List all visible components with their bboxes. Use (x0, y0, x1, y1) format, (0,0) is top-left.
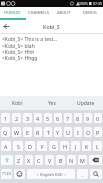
staticText: R (36, 129, 40, 136)
staticText: 4 (36, 115, 40, 122)
button[interactable]: G (49, 141, 58, 151)
staticText: O (86, 129, 91, 136)
staticText: ?123 (2, 171, 12, 177)
staticText: F (41, 143, 44, 150)
button[interactable]: K (82, 141, 91, 151)
staticText: X (27, 157, 31, 164)
button[interactable]: H (60, 141, 69, 151)
button[interactable]: 5 (44, 113, 52, 123)
staticText: 2 (15, 115, 19, 122)
staticText: Z (17, 157, 21, 164)
button[interactable]: CHANNELS (25, 7, 51, 18)
staticText: ABOUT (57, 10, 71, 15)
button[interactable]: A (1, 141, 11, 151)
staticText: 9 (86, 115, 90, 122)
staticText: Q (3, 129, 8, 136)
button[interactable]: L (93, 141, 102, 151)
button[interactable]: S (13, 141, 23, 151)
staticText: 8 (76, 115, 80, 122)
button[interactable]: 0 (94, 113, 102, 123)
button[interactable]: Backspace (89, 155, 102, 165)
staticText: D (28, 143, 32, 150)
staticText: K (85, 143, 89, 150)
button[interactable]: Kobi (0, 96, 35, 110)
button[interactable]: J (71, 141, 80, 151)
staticText: 5 (46, 115, 50, 122)
button[interactable]: Search (90, 169, 102, 179)
staticText: P (96, 129, 100, 136)
staticText: W (14, 129, 20, 136)
button[interactable]: E (23, 127, 32, 137)
button[interactable]: U (64, 127, 72, 137)
staticText: FRIENDS (4, 10, 21, 15)
button[interactable]: 6 (54, 113, 62, 123)
staticText: C (37, 157, 41, 164)
staticText: N (69, 157, 74, 164)
button[interactable]: X (25, 155, 33, 165)
staticText: 07:35 (93, 1, 102, 6)
staticText: Kobi (12, 100, 23, 107)
button[interactable]: 4 (34, 113, 42, 123)
button[interactable]: DEBUG (77, 7, 103, 18)
button[interactable]: V (45, 155, 54, 165)
staticText: 3 (26, 115, 30, 122)
button[interactable]: . (77, 169, 88, 179)
button[interactable]: M (78, 155, 87, 165)
button[interactable]: I (74, 127, 82, 137)
staticText: Yes (48, 100, 56, 107)
staticText: L (96, 143, 99, 150)
staticText: ‹ English (US) › (37, 172, 66, 177)
staticText: V (48, 157, 52, 164)
button[interactable]: W (12, 127, 21, 137)
staticText: 100% (79, 1, 88, 6)
staticText: J (75, 143, 77, 150)
staticText: DEBUG (83, 10, 97, 15)
button[interactable]: Shift (1, 155, 13, 165)
staticText: Kobi_S (43, 23, 60, 30)
button[interactable]: Z (15, 155, 23, 165)
button[interactable]: Update (69, 96, 103, 110)
staticText: A (4, 143, 8, 150)
staticText: 7 (66, 115, 70, 122)
staticText: T (47, 129, 50, 136)
button[interactable]: 7 (64, 113, 72, 123)
button[interactable]: Emoji (14, 169, 25, 179)
button[interactable]: T (44, 127, 52, 137)
button[interactable]: Yes (35, 96, 69, 110)
button[interactable]: Q (1, 127, 10, 137)
staticText: E (26, 129, 29, 136)
staticText: . (82, 171, 84, 178)
button[interactable]: ‹ English (US) › (27, 169, 75, 179)
button[interactable]: 9 (84, 113, 92, 123)
button[interactable]: N (67, 155, 76, 165)
staticText: S (17, 143, 20, 150)
button[interactable]: C (35, 155, 43, 165)
button[interactable]: ABOUT (51, 7, 77, 18)
staticText: 6 (56, 115, 60, 122)
button[interactable]: O (84, 127, 92, 137)
staticText: 0 (96, 115, 100, 122)
button[interactable]: D (25, 141, 35, 151)
staticText: H (63, 143, 67, 150)
button[interactable]: P (94, 127, 102, 137)
staticText: CHANNELS (28, 10, 49, 15)
staticText: U (66, 129, 70, 136)
button[interactable]: 2 (12, 113, 21, 123)
button[interactable]: FRIENDS (0, 7, 25, 18)
button[interactable]: B (56, 155, 65, 165)
staticText: 1 (4, 115, 8, 122)
button[interactable]: Back (0, 20, 13, 33)
staticText: Y (56, 129, 60, 136)
button[interactable]: Y (54, 127, 62, 137)
button[interactable]: 8 (74, 113, 82, 123)
button[interactable]: R (34, 127, 42, 137)
button[interactable]: F (37, 141, 47, 151)
staticText: I (77, 129, 79, 136)
staticText: B (59, 157, 63, 164)
staticText: M (80, 157, 85, 164)
button[interactable]: ?123 (1, 169, 12, 179)
button[interactable]: 1 (1, 113, 10, 123)
button[interactable]: 3 (23, 113, 32, 123)
staticText: Update (77, 100, 95, 107)
staticText: <Kobi_S> This is a test... <Kobi_S> blah… (2, 36, 58, 61)
